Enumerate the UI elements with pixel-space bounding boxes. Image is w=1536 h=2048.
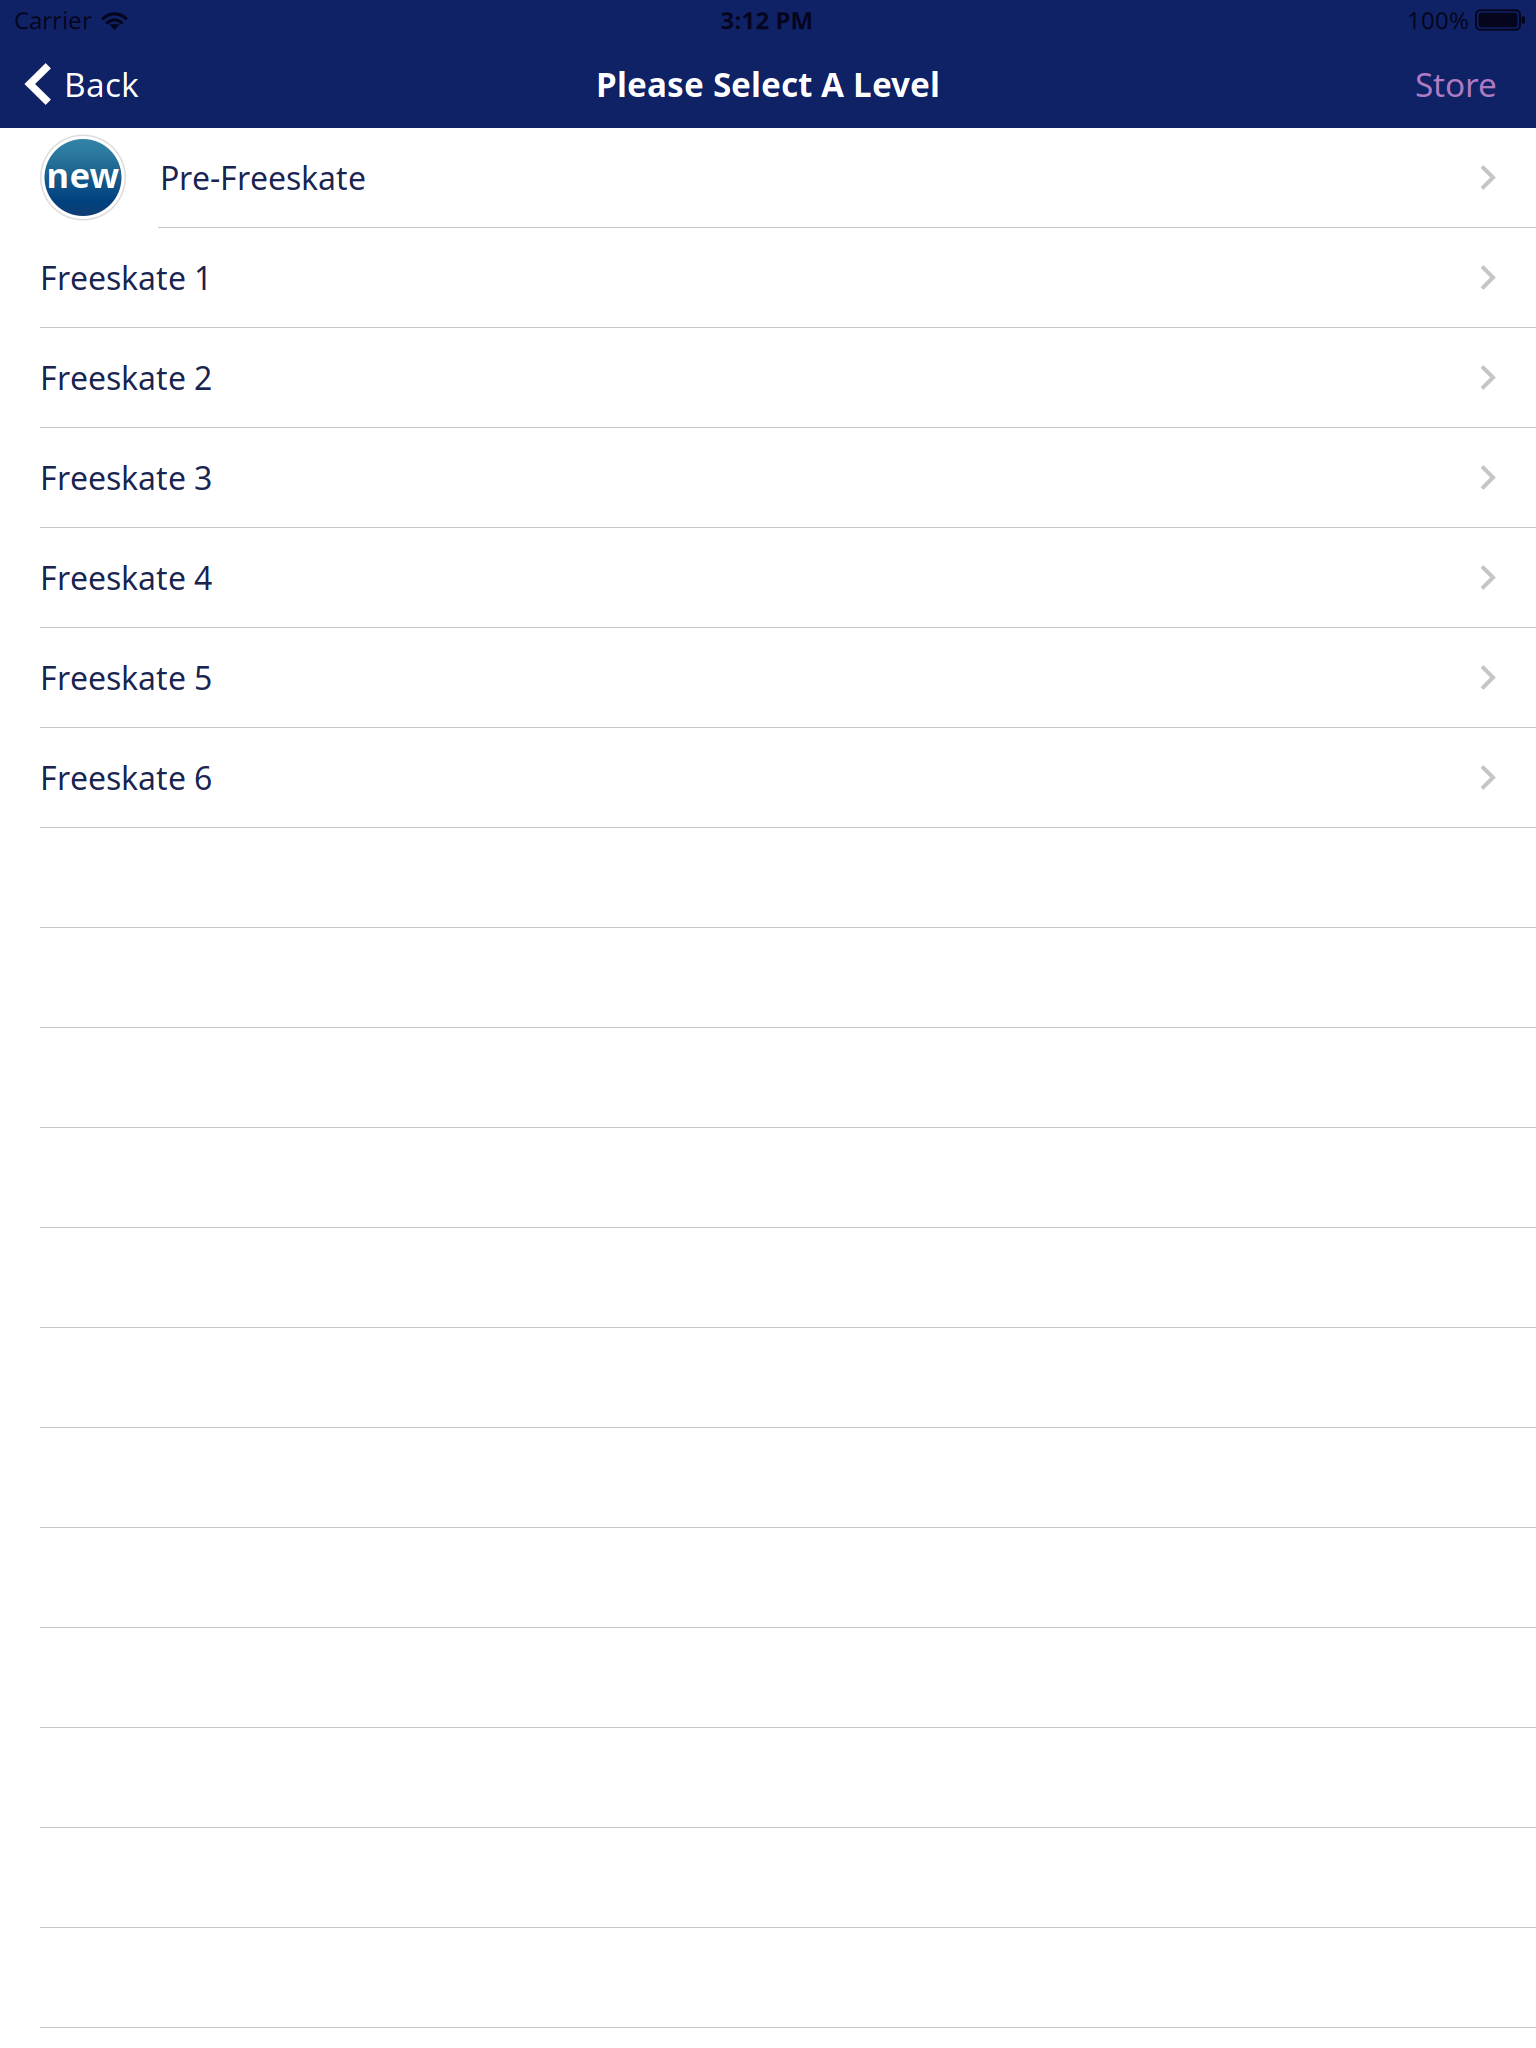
button[interactable]: Freeskate 3 — [0, 428, 1536, 527]
button[interactable]: Store — [1389, 40, 1536, 128]
staticText: Store — [1415, 62, 1497, 106]
staticText: new — [46, 151, 119, 197]
staticText: Freeskate 4 — [40, 556, 212, 599]
staticText: Carrier — [14, 4, 92, 36]
button[interactable]: Back — [0, 40, 157, 128]
staticText: Freeskate 1 — [40, 256, 212, 299]
staticText: Please Select A Level — [596, 62, 940, 106]
staticText: Freeskate 5 — [40, 656, 212, 699]
staticText: Pre-Freeskate — [160, 156, 366, 199]
staticText: Freeskate 6 — [40, 756, 212, 799]
staticText: Freeskate 3 — [40, 456, 212, 499]
button[interactable]: Freeskate 5 — [0, 628, 1536, 727]
staticText: 100% — [1407, 4, 1469, 36]
staticText: Back — [64, 62, 139, 106]
staticText: Freeskate 2 — [40, 356, 212, 399]
button[interactable]: Freeskate 6 — [0, 728, 1536, 827]
button[interactable]: new — [0, 128, 1536, 227]
staticText: 3:12 PM — [720, 4, 813, 36]
button[interactable]: Freeskate 2 — [0, 328, 1536, 427]
button[interactable]: Freeskate 1 — [0, 228, 1536, 327]
button[interactable]: Freeskate 4 — [0, 528, 1536, 627]
